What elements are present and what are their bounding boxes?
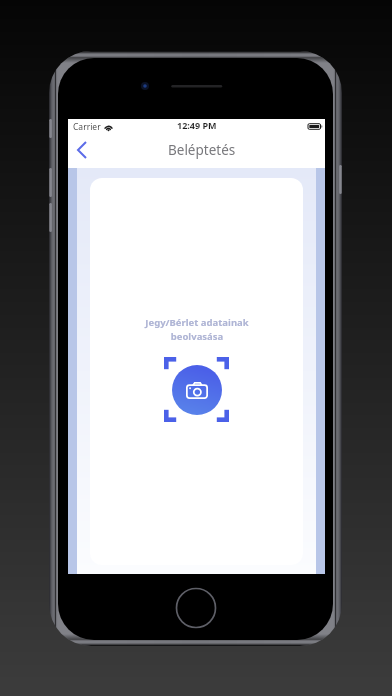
staticText: Beléptetés [168,141,236,159]
button[interactable]: Back [68,135,100,167]
staticText: 12:49 PM [177,119,217,131]
staticText: Carrier [73,121,101,133]
staticText: Jegy/Bérlet adatainak beolvasása [145,316,249,343]
button[interactable]: Scan ticket [164,357,229,422]
